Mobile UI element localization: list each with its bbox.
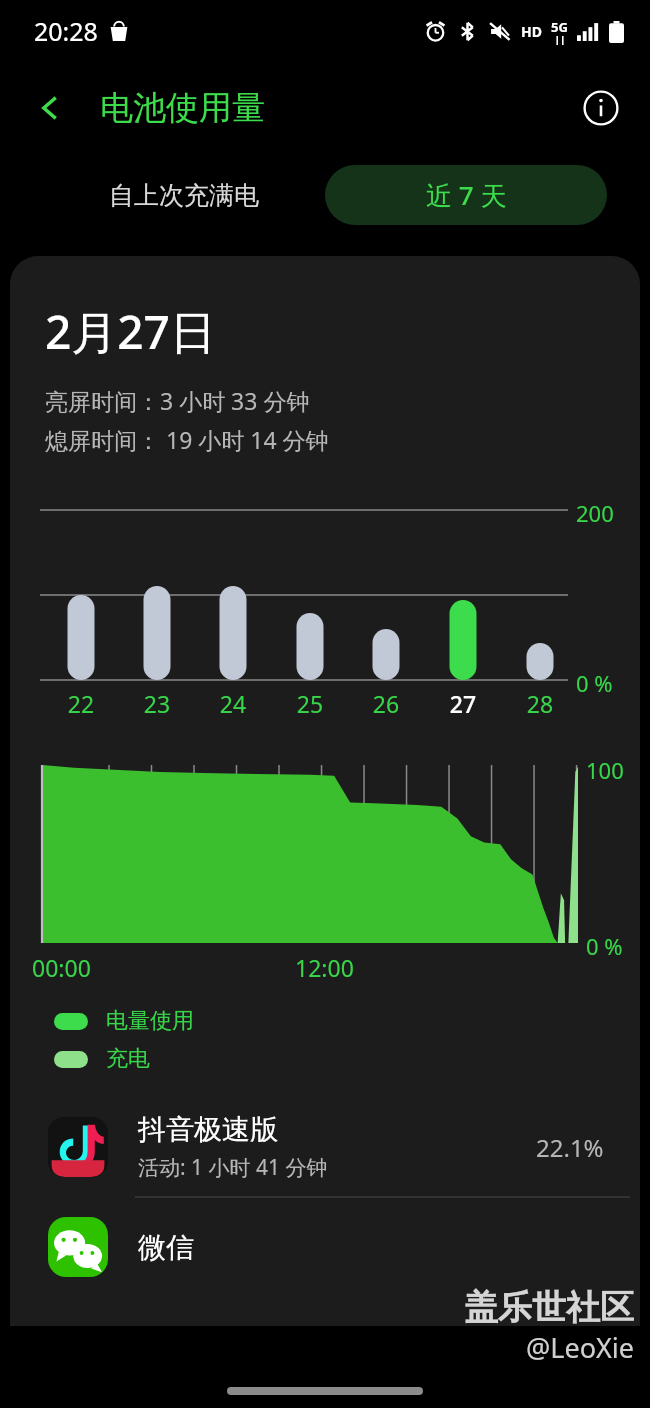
staticText: 电池使用量 xyxy=(100,87,265,129)
staticText: 盖乐世社区 xyxy=(464,1286,634,1329)
staticText: 电量使用 xyxy=(106,1007,194,1035)
staticText: 5G xyxy=(551,18,568,36)
staticText: 2月27日 xyxy=(45,300,216,363)
staticText: 活动: 1 小时 41 分钟 xyxy=(138,1153,328,1182)
staticText: 自上次充满电 xyxy=(109,180,259,211)
button[interactable]: 近 7 天 xyxy=(325,165,607,225)
staticText: 20:28 xyxy=(34,14,98,48)
button[interactable]: Info xyxy=(574,81,628,135)
staticText: 100 xyxy=(586,755,624,785)
staticText: @LeoXie xyxy=(526,1329,634,1366)
staticText: 26 xyxy=(366,688,406,719)
button[interactable]: 微信 xyxy=(10,1197,640,1297)
staticText: 0 % xyxy=(586,931,623,961)
staticText: 近 7 天 xyxy=(426,177,507,213)
staticText: 27 xyxy=(443,688,483,719)
staticText: HD xyxy=(521,22,542,41)
staticText: 0 % xyxy=(576,668,613,698)
button[interactable]: Back xyxy=(22,80,78,136)
staticText: 12:00 xyxy=(295,952,354,983)
staticText: 微信 xyxy=(138,1230,194,1265)
button[interactable]: 自上次充满电 xyxy=(43,165,325,225)
staticText: 200 xyxy=(576,498,614,528)
button[interactable]: 抖音极速版 xyxy=(10,1097,640,1197)
staticText: 22 xyxy=(61,688,101,719)
staticText: 充电 xyxy=(106,1045,150,1073)
staticText: 亮屏时间：3 小时 33 分钟 xyxy=(45,385,310,416)
staticText: 23 xyxy=(137,688,177,719)
staticText: 25 xyxy=(290,688,330,719)
staticText: 00:00 xyxy=(32,952,91,983)
staticText: 24 xyxy=(213,688,253,719)
staticText: 28 xyxy=(520,688,560,719)
staticText: 22.1% xyxy=(536,1131,604,1164)
staticText: 抖音极速版 xyxy=(138,1112,278,1147)
staticText: 熄屏时间： 19 小时 14 分钟 xyxy=(45,424,329,455)
